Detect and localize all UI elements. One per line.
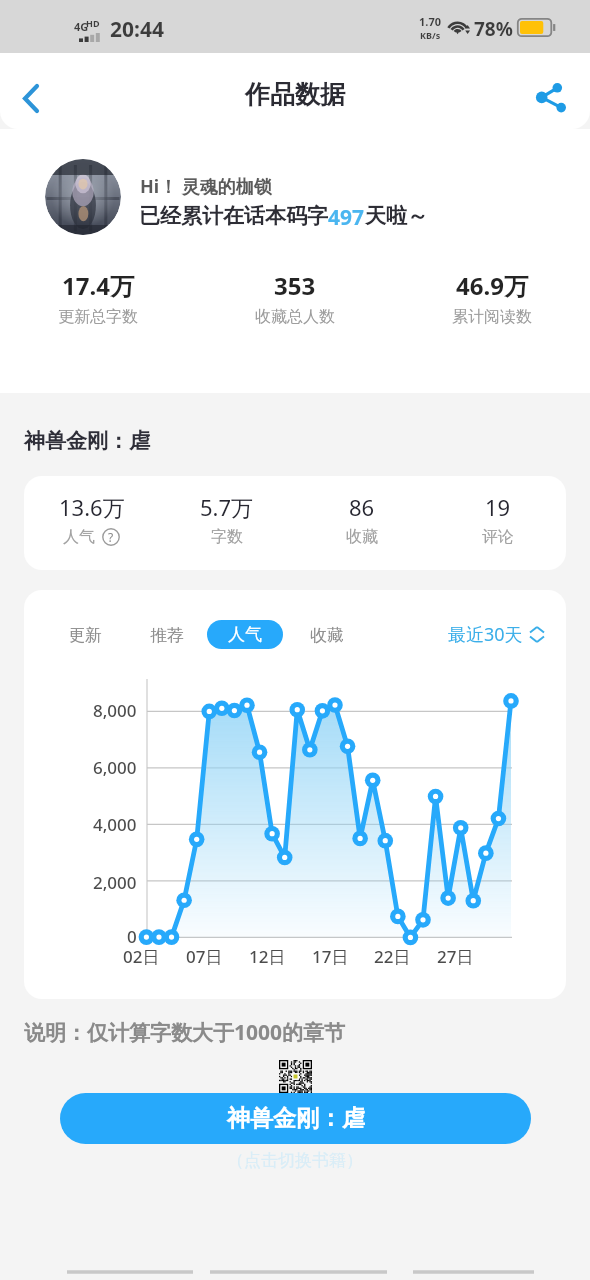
staticText: HD: [86, 17, 100, 29]
staticText: ?: [108, 529, 114, 545]
staticText: 更新: [68, 625, 102, 646]
staticText: 2,000: [93, 871, 137, 894]
staticText: 6,000: [93, 756, 137, 779]
staticText: 8,000: [93, 699, 137, 722]
staticText: 1.70: [419, 14, 441, 29]
staticText: 累计阅读数: [452, 307, 532, 327]
staticText: 13.6万: [59, 492, 125, 522]
staticText: 78%: [474, 16, 513, 42]
staticText: 0: [127, 925, 137, 948]
button[interactable]: 5.7万: [159, 492, 294, 547]
button[interactable]: 更新: [68, 625, 102, 646]
staticText: 最近30天: [448, 622, 523, 647]
button[interactable]: 神兽金刚：虐: [60, 1093, 531, 1144]
staticText: 12日: [249, 945, 286, 968]
staticText: 评论: [482, 527, 514, 547]
staticText: 22日: [374, 945, 411, 968]
button[interactable]: 推荐: [150, 625, 184, 646]
staticText: 17日: [312, 945, 349, 968]
staticText: 86: [349, 492, 375, 522]
staticText: 推荐: [150, 625, 184, 646]
staticText: 07日: [186, 945, 223, 968]
button[interactable]: Profile picture: [45, 159, 121, 235]
staticText: 天啦～: [365, 203, 428, 229]
button[interactable]: 19: [430, 492, 566, 547]
staticText: 46.9万: [456, 269, 528, 302]
staticText: 19: [485, 492, 511, 522]
staticText: 5.7万: [200, 492, 254, 522]
staticText: 收藏总人数: [255, 307, 335, 327]
staticText: 已经累计在话本码字: [139, 203, 328, 229]
staticText: 人气: [228, 624, 262, 645]
staticText: 17.4万: [62, 269, 134, 302]
staticText: 更新总字数: [58, 307, 138, 327]
button[interactable]: 86: [294, 492, 430, 547]
staticText: KB/s: [420, 29, 441, 41]
button[interactable]: 13.6万: [24, 492, 159, 547]
staticText: 497: [328, 203, 365, 232]
button[interactable]: 人气: [207, 620, 283, 649]
staticText: （点击切换书籍）: [227, 1150, 363, 1171]
staticText: 神兽金刚：虐: [24, 428, 150, 454]
staticText: 20:44: [110, 15, 164, 44]
staticText: Hi！ 灵魂的枷锁: [140, 174, 272, 199]
button[interactable]: 最近30天: [448, 622, 544, 647]
button[interactable]: Share: [526, 73, 576, 123]
button[interactable]: 收藏: [310, 625, 344, 646]
staticText: 4,000: [93, 813, 137, 836]
staticText: 02日: [123, 945, 160, 968]
staticText: 说明：仅计算字数大于1000的章节: [24, 1018, 346, 1047]
staticText: 字数: [211, 527, 243, 547]
staticText: 作品数据: [245, 79, 345, 110]
staticText: 收藏: [310, 625, 344, 646]
staticText: 收藏: [346, 527, 378, 547]
staticText: 神兽金刚：虐: [227, 1104, 365, 1133]
staticText: 4G: [74, 19, 89, 34]
staticText: 27日: [437, 945, 474, 968]
button[interactable]: Back: [4, 71, 58, 125]
staticText: 353: [274, 269, 316, 302]
staticText: 人气: [63, 527, 95, 547]
